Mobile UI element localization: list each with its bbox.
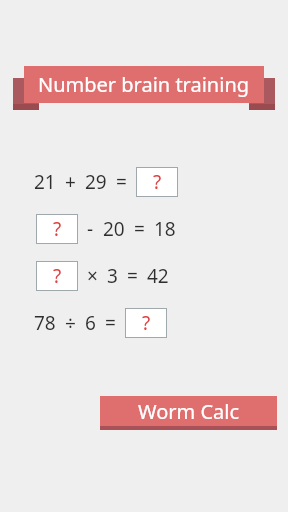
staticText: 6 xyxy=(85,310,96,336)
staticText: × xyxy=(87,263,98,289)
staticText: ? xyxy=(153,169,162,195)
staticText: 20 xyxy=(103,216,125,242)
staticText: Worm Calc xyxy=(138,398,240,425)
staticText: 18 xyxy=(154,216,176,242)
staticText: = xyxy=(134,216,145,242)
staticText: 3 xyxy=(107,263,118,289)
button[interactable]: Answer xyxy=(36,261,78,291)
button[interactable]: Worm Calc xyxy=(100,396,277,430)
button[interactable]: Answer xyxy=(125,308,167,338)
button[interactable]: Answer xyxy=(36,214,78,244)
staticText: ? xyxy=(53,263,62,289)
staticText: ? xyxy=(142,310,151,336)
staticText: + xyxy=(65,169,76,195)
staticText: 21 xyxy=(34,169,56,195)
button[interactable]: Number brain training xyxy=(24,66,264,103)
staticText: - xyxy=(87,216,94,242)
staticText: Number brain training xyxy=(38,71,250,98)
staticText: ? xyxy=(53,216,62,242)
button[interactable]: Answer xyxy=(136,167,178,197)
staticText: 29 xyxy=(85,169,107,195)
staticText: = xyxy=(105,310,116,336)
staticText: = xyxy=(116,169,127,195)
staticText: = xyxy=(127,263,138,289)
staticText: 42 xyxy=(147,263,169,289)
staticText: ÷ xyxy=(65,310,76,336)
staticText: 78 xyxy=(34,310,56,336)
